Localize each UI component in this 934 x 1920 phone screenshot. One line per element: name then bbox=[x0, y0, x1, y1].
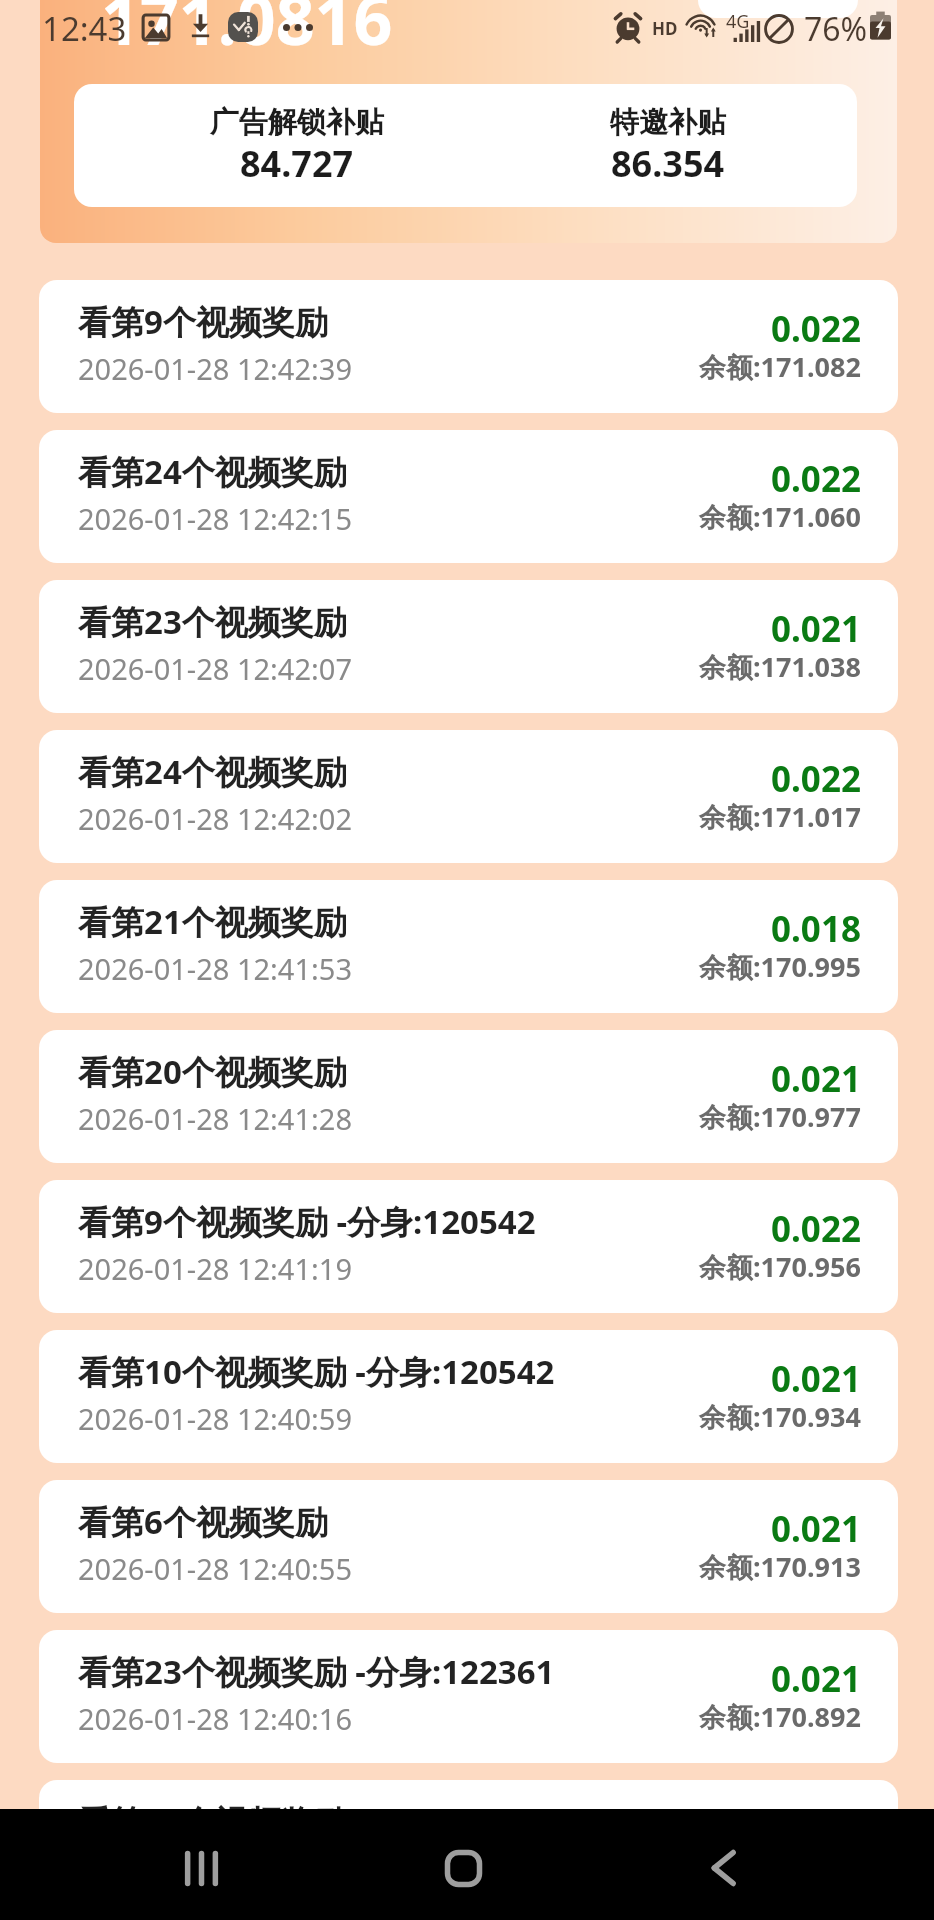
staticText: 0.021 bbox=[771, 1355, 861, 1403]
staticText: 171.0816 bbox=[101, 0, 393, 65]
staticText: 0.022 bbox=[771, 755, 861, 803]
staticText: 看第24个视频奖励 bbox=[78, 749, 347, 794]
staticText: 看第23个视频奖励 -分身:122361 bbox=[78, 1649, 555, 1694]
staticText: 看第9个视频奖励 -分身:120542 bbox=[78, 1199, 536, 1244]
staticText: 广告解锁补贴 bbox=[210, 104, 384, 141]
staticText: 看第10个视频奖励 -分身:120542 bbox=[78, 1349, 555, 1394]
staticText: 看第23个视频奖励 bbox=[78, 599, 347, 644]
staticText: 余额:171.060 bbox=[699, 498, 861, 535]
staticText: 2026-01-28 12:40:59 bbox=[78, 1399, 352, 1438]
staticText: 看第11个视频奖励 bbox=[78, 1799, 347, 1844]
button[interactable]: 看第21个视频奖励 bbox=[39, 880, 898, 1013]
staticText: 余额:170.871 bbox=[699, 1848, 861, 1885]
staticText: 2026-01-28 12:42:07 bbox=[78, 649, 352, 688]
staticText: 余额:170.913 bbox=[699, 1548, 861, 1585]
staticText: 0.022 bbox=[771, 305, 861, 353]
button[interactable]: Home bbox=[415, 1823, 511, 1913]
staticText: 0.021 bbox=[771, 1655, 861, 1703]
staticText: 看第20个视频奖励 bbox=[78, 1049, 347, 1094]
staticText: 12:43 bbox=[42, 6, 127, 51]
staticText: 86.354 bbox=[611, 139, 725, 188]
button[interactable]: 看第20个视频奖励 bbox=[39, 1030, 898, 1163]
button[interactable]: 看第23个视频奖励 bbox=[39, 580, 898, 713]
button[interactable]: 广告解锁补贴 bbox=[117, 84, 477, 207]
staticText: 2026-01-28 12:42:15 bbox=[78, 499, 352, 538]
button[interactable]: 看第23个视频奖励 -分身:122361 bbox=[39, 1630, 898, 1763]
staticText: 余额:170.892 bbox=[699, 1698, 861, 1735]
staticText: 0.022 bbox=[771, 1205, 861, 1253]
staticText: 0.018 bbox=[771, 905, 861, 953]
staticText: HD bbox=[652, 17, 678, 40]
staticText: 余额:170.977 bbox=[699, 1098, 861, 1135]
button[interactable]: Recent apps bbox=[153, 1823, 249, 1913]
staticText: 0.022 bbox=[771, 455, 861, 503]
staticText: 0.021 bbox=[771, 1055, 861, 1103]
staticText: 2026-01-28 12:41:28 bbox=[78, 1099, 352, 1138]
staticText: 2026-01-28 12:40:55 bbox=[78, 1549, 352, 1588]
button[interactable]: 看第6个视频奖励 bbox=[39, 1480, 898, 1613]
button[interactable]: 特邀补贴 bbox=[488, 84, 848, 207]
staticText: 2026-01-28 12:42:39 bbox=[78, 349, 352, 388]
staticText: 2026-01-28 12:41:53 bbox=[78, 949, 352, 988]
staticText: 84.727 bbox=[240, 139, 354, 188]
button[interactable]: 看第10个视频奖励 -分身:120542 bbox=[39, 1330, 898, 1463]
staticText: 余额:170.995 bbox=[699, 948, 861, 985]
staticText: 看第9个视频奖励 bbox=[78, 299, 328, 344]
staticText: 4G bbox=[726, 9, 750, 34]
staticText: 看第6个视频奖励 bbox=[78, 1499, 328, 1544]
staticText: 余额:171.017 bbox=[699, 798, 861, 835]
button[interactable]: 看第24个视频奖励 bbox=[39, 730, 898, 863]
staticText: 2026-01-28 12:41:19 bbox=[78, 1249, 352, 1288]
button[interactable]: 看第9个视频奖励 -分身:120542 bbox=[39, 1180, 898, 1313]
staticText: 余额:171.082 bbox=[699, 348, 861, 385]
button[interactable]: 看第11个视频奖励 bbox=[39, 1780, 898, 1913]
staticText: 76% bbox=[804, 7, 868, 51]
staticText: 0.021 bbox=[771, 1805, 861, 1853]
staticText: 2026-01-28 12:40:16 bbox=[78, 1699, 352, 1738]
staticText: 看第21个视频奖励 bbox=[78, 899, 347, 944]
staticText: 特邀补贴 bbox=[610, 104, 726, 141]
button[interactable]: Back bbox=[675, 1823, 771, 1913]
staticText: 0.021 bbox=[771, 1505, 861, 1553]
staticText: 0.021 bbox=[771, 605, 861, 653]
staticText: 余额:170.956 bbox=[699, 1248, 861, 1285]
staticText: 2026-01-28 12:42:02 bbox=[78, 799, 352, 838]
staticText: 余额:170.934 bbox=[699, 1398, 861, 1435]
button[interactable]: 看第24个视频奖励 bbox=[39, 430, 898, 563]
staticText: 看第24个视频奖励 bbox=[78, 449, 347, 494]
button[interactable]: 看第9个视频奖励 bbox=[39, 280, 898, 413]
staticText: 余额:171.038 bbox=[699, 648, 861, 685]
staticText: 2026-01-28 12:40:01 bbox=[78, 1849, 352, 1888]
